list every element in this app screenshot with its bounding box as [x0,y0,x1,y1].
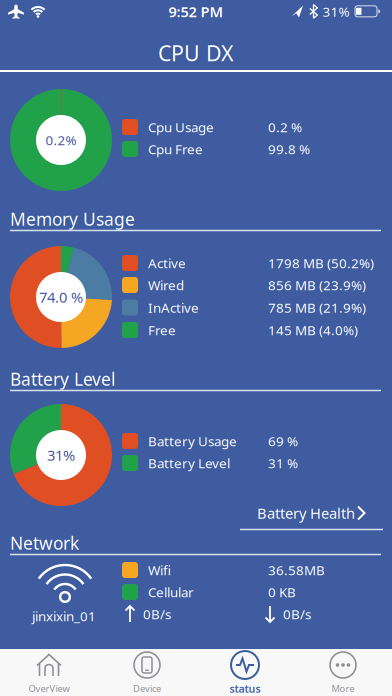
staticText: 0B/s [143,605,171,623]
staticText: Active [148,254,186,272]
staticText: 0B/s [283,605,311,623]
staticText: Network [10,531,79,554]
staticText: 1798 MB (50.2%) [268,254,374,272]
staticText: Cpu Free [148,140,203,158]
staticText: 856 MB (23.9%) [268,276,366,294]
staticText: 36.58MB [268,561,325,579]
button[interactable]: OverView [0,649,98,696]
staticText: Wifi [148,561,171,579]
staticText: InActive [148,299,199,316]
staticText: Cpu Usage [148,118,214,136]
staticText: Battery Level [10,367,115,390]
staticText: 99.8 % [268,140,310,158]
staticText: Battery Level [148,454,230,472]
staticText: 0 KB [268,583,296,601]
staticText: 31% [47,445,75,465]
staticText: Device [133,682,161,695]
staticText: Memory Usage [10,207,135,230]
staticText: Battery Usage [148,432,237,450]
staticText: More [331,682,354,695]
staticText: 31% [322,3,349,20]
button[interactable]: Device [98,649,196,696]
staticText: Cellular [148,583,194,601]
staticText: Free [148,321,176,339]
staticText: 785 MB (21.9%) [268,299,366,316]
button[interactable]: status [196,649,294,696]
button[interactable]: Battery Health [220,496,390,534]
staticText: Wired [148,276,184,294]
staticText: 69 % [268,432,298,450]
staticText: 0.2 % [268,118,302,136]
button[interactable]: More [294,649,392,696]
staticText: Battery Health [257,503,355,523]
staticText: jinxixin_01 [32,607,96,625]
staticText: 145 MB (4.0%) [268,321,358,339]
staticText: CPU DX [158,39,234,67]
staticText: 0.2% [45,131,76,149]
staticText: OverView [28,682,69,695]
staticText: 9:52 PM [168,2,223,21]
staticText: 31 % [268,454,298,472]
staticText: status [229,681,260,696]
staticText: 74.0 % [39,287,83,307]
